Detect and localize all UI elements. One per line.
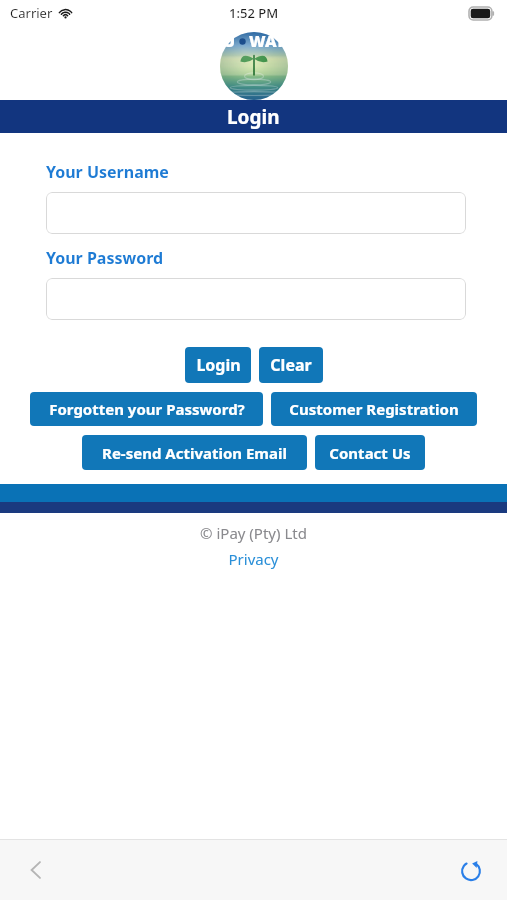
- button[interactable]: Contact Us: [315, 435, 425, 470]
- staticText: Carrier: [10, 4, 53, 22]
- staticText: Your Password: [46, 247, 164, 269]
- button[interactable]: Login: [185, 347, 251, 383]
- staticText: © iPay (Pty) Ltd: [0, 523, 507, 543]
- staticText: Login: [227, 104, 280, 130]
- staticText: BLU: [203, 30, 236, 52]
- button[interactable]: Forgotten your Password?: [30, 392, 263, 426]
- staticText: WATER: [249, 30, 305, 52]
- staticText: Re-send Activation Email: [102, 443, 287, 463]
- staticText: Clear: [270, 354, 312, 376]
- button[interactable]: Re-send Activation Email: [82, 435, 307, 470]
- staticText: Your Username: [46, 161, 169, 183]
- button[interactable]: Privacy: [228, 549, 279, 569]
- button[interactable]: Clear: [259, 347, 323, 383]
- staticText: Contact Us: [329, 443, 411, 463]
- button[interactable]: Back: [14, 848, 58, 892]
- button[interactable]: Reload: [449, 848, 493, 892]
- staticText: Privacy: [228, 549, 279, 569]
- staticText: Customer Registration: [289, 399, 459, 419]
- staticText: Login: [196, 354, 241, 376]
- button[interactable]: [46, 278, 466, 320]
- staticText: Forgotten your Password?: [49, 399, 245, 419]
- staticText: 1:52 PM: [229, 4, 279, 22]
- button[interactable]: [46, 192, 466, 234]
- button[interactable]: Customer Registration: [271, 392, 477, 426]
